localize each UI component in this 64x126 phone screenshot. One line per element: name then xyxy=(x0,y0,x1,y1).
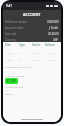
staticText: Reference number xyxy=(5,20,28,24)
button[interactable]: 11 May xyxy=(5,58,59,61)
staticText: Showing 2 transactions xyxy=(5,65,32,68)
staticText: 45.00 xyxy=(32,58,45,61)
staticText: Sort code xyxy=(5,32,17,36)
staticText: ACCOUNT xyxy=(23,12,41,17)
staticText: GBP xyxy=(53,38,59,42)
button[interactable]: Currency xyxy=(5,37,59,42)
staticText: Type xyxy=(19,43,32,47)
staticText: 23450987 xyxy=(47,20,59,24)
button[interactable]: Account holder xyxy=(5,25,59,31)
staticText: DD xyxy=(19,58,32,61)
button[interactable]: Sort code xyxy=(5,31,59,37)
staticText: 120.00 xyxy=(32,51,45,54)
button[interactable]: 12 May xyxy=(5,51,59,54)
staticText: J. Smith xyxy=(49,26,59,30)
staticText: 1,120.00 xyxy=(45,58,59,61)
staticText: Available balance xyxy=(5,74,25,77)
staticText: 1,240.00 xyxy=(45,51,59,54)
staticText: FPI xyxy=(19,51,32,54)
staticText: Updated just now xyxy=(5,86,24,89)
staticText: 11 May xyxy=(5,58,19,61)
staticText: Date xyxy=(5,43,19,47)
button[interactable]: £1,240 xyxy=(5,78,18,84)
staticText: Balance xyxy=(45,43,59,47)
staticText: 12 May xyxy=(5,51,19,54)
button[interactable]: Reference number xyxy=(5,19,59,25)
staticText: Paid in xyxy=(32,43,45,47)
staticText: £1,240 xyxy=(7,79,16,83)
staticText: 9:41 xyxy=(6,4,12,8)
staticText: Account holder xyxy=(5,26,24,30)
staticText: Currency xyxy=(5,38,16,42)
staticText: Details xyxy=(5,92,13,95)
staticText: 20-00-00 xyxy=(48,32,59,36)
